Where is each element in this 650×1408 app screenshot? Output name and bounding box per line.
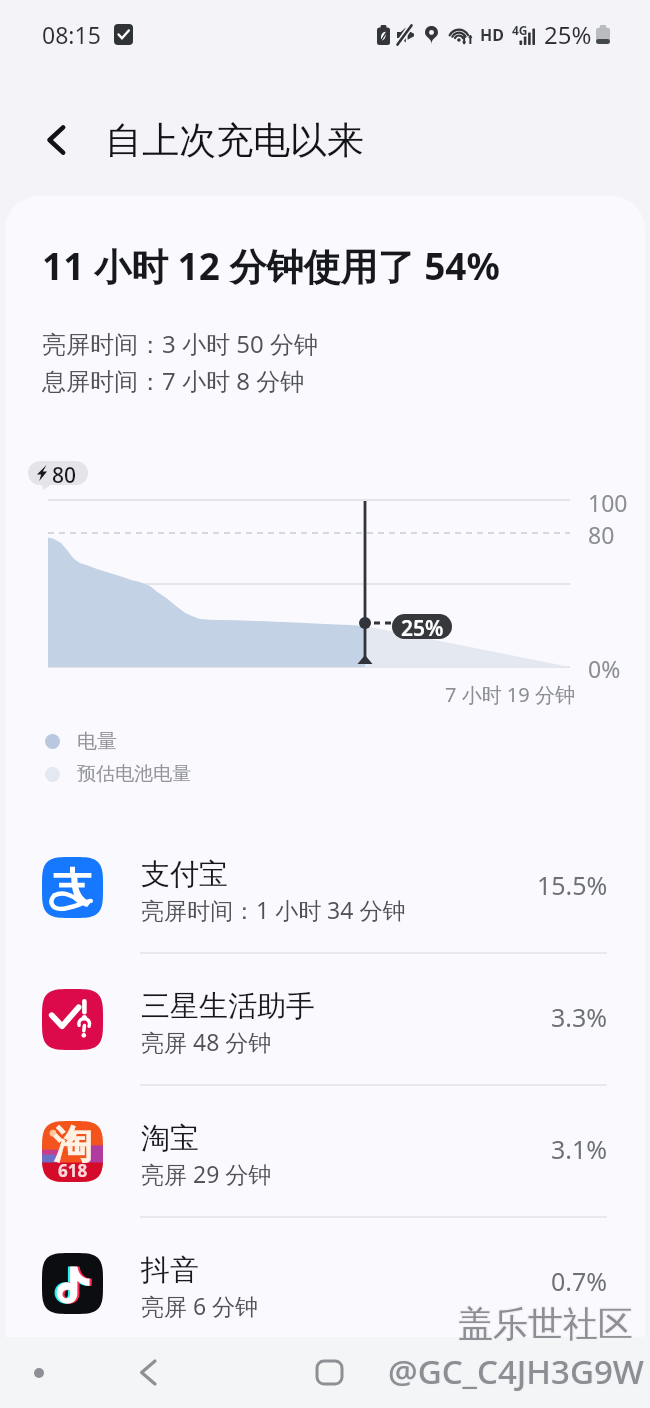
- staticText: @GC_C4JH3G9W: [388, 1349, 644, 1394]
- staticText: 08:15: [42, 19, 101, 50]
- button[interactable]: 支付宝: [5, 822, 645, 954]
- staticText: 11 小时 12 分钟使用了 54%: [42, 240, 500, 291]
- staticText: 预估电池电量: [77, 762, 191, 786]
- button[interactable]: 抖音: [5, 1218, 645, 1337]
- staticText: 淘宝: [141, 1120, 199, 1157]
- staticText: 15.5%: [537, 868, 608, 902]
- button[interactable]: Back: [116, 1337, 178, 1408]
- button[interactable]: 三星生活助手: [5, 954, 645, 1086]
- staticText: @GC_C4JH3G9W: [389, 1350, 645, 1395]
- staticText: 80: [588, 519, 615, 550]
- staticText: 618: [58, 1159, 88, 1182]
- staticText: @GC_C4JH3G9W: [387, 1348, 643, 1393]
- staticText: 三星生活助手: [141, 988, 315, 1025]
- staticText: 0.7%: [551, 1264, 608, 1298]
- staticText: 盖乐世社区: [458, 1301, 633, 1345]
- staticText: @GC_C4JH3G9W: [389, 1348, 645, 1393]
- staticText: 亮屏 48 分钟: [141, 1026, 272, 1057]
- staticText: 盖乐世社区: [457, 1301, 632, 1345]
- staticText: 息屏时间：7 小时 8 分钟: [42, 364, 305, 397]
- staticText: @GC_C4JH3G9W: [388, 1348, 644, 1393]
- button[interactable]: 淘: [5, 1086, 645, 1218]
- staticText: 25%: [401, 614, 444, 639]
- staticText: @GC_C4JH3G9W: [387, 1350, 643, 1395]
- staticText: 0%: [588, 653, 621, 684]
- staticText: HD: [480, 24, 504, 46]
- button[interactable]: Back: [28, 111, 86, 169]
- staticText: 盖乐世社区: [457, 1302, 632, 1346]
- button[interactable]: Recents: [8, 1337, 70, 1408]
- staticText: 盖乐世社区: [457, 1303, 632, 1347]
- staticText: @GC_C4JH3G9W: [388, 1350, 644, 1395]
- staticText: 自上次充电以来: [105, 117, 364, 164]
- staticText: 盖乐世社区: [459, 1303, 634, 1347]
- staticText: 支付宝: [141, 856, 228, 893]
- staticText: 3.3%: [551, 1000, 608, 1034]
- staticText: 盖乐世社区: [458, 1302, 633, 1346]
- staticText: 4G: [512, 22, 528, 38]
- staticText: 亮屏 6 分钟: [141, 1290, 259, 1321]
- button[interactable]: Home: [298, 1337, 360, 1408]
- staticText: 盖乐世社区: [459, 1302, 634, 1346]
- staticText: 亮屏时间：1 小时 34 分钟: [141, 894, 406, 925]
- staticText: @GC_C4JH3G9W: [389, 1349, 645, 1394]
- staticText: 亮屏时间：3 小时 50 分钟: [42, 327, 318, 360]
- staticText: 盖乐世社区: [459, 1301, 634, 1345]
- staticText: 抖音: [141, 1252, 199, 1289]
- staticText: 电量: [77, 729, 117, 754]
- staticText: @GC_C4JH3G9W: [387, 1349, 643, 1394]
- staticText: 80: [52, 461, 77, 485]
- staticText: 7 小时 19 分钟: [445, 681, 575, 708]
- staticText: 3.1%: [551, 1132, 608, 1166]
- staticText: 淘: [53, 1120, 92, 1169]
- staticText: 25%: [544, 18, 592, 51]
- staticText: 盖乐世社区: [458, 1303, 633, 1347]
- staticText: 亮屏 29 分钟: [141, 1158, 272, 1189]
- staticText: 100: [588, 487, 628, 518]
